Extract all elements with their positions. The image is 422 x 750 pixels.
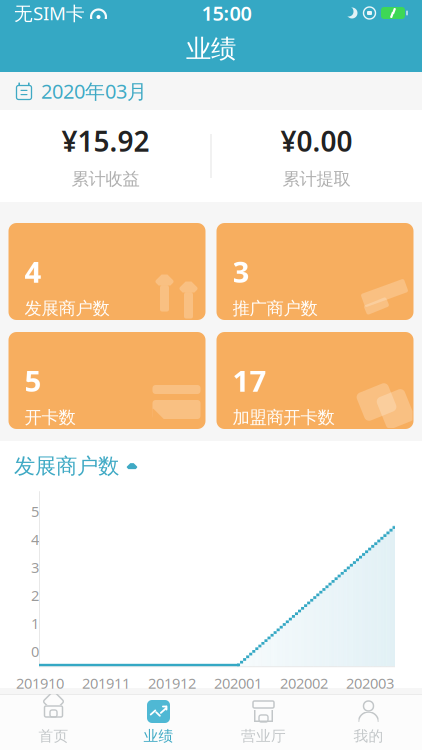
staticText: 我的 xyxy=(353,727,383,745)
button[interactable]: 我的 xyxy=(316,695,421,750)
staticText: 17 xyxy=(232,361,266,400)
button[interactable]: 2020年03月 xyxy=(0,72,422,110)
staticText: 201911 xyxy=(82,673,130,693)
staticText: 202003 xyxy=(346,673,394,693)
staticText: 4 xyxy=(31,529,39,549)
button[interactable]: 营业厅 xyxy=(211,695,316,750)
staticText: 5 xyxy=(31,501,39,521)
button[interactable]: 首页 xyxy=(1,695,106,750)
staticText: 累计提取 xyxy=(282,168,350,190)
staticText: 0 xyxy=(31,641,39,661)
staticText: 4 xyxy=(24,252,41,291)
staticText: 累计收益 xyxy=(71,168,139,190)
button[interactable]: 5 xyxy=(8,332,205,429)
staticText: 1 xyxy=(31,613,39,633)
staticText: 3 xyxy=(232,252,249,291)
staticText: 业绩 xyxy=(186,33,236,64)
button[interactable]: 3 xyxy=(216,223,413,320)
staticText: 3 xyxy=(31,557,39,577)
staticText: 202001 xyxy=(214,673,262,693)
staticText: 营业厅 xyxy=(241,727,286,745)
staticText: 加盟商开卡数 xyxy=(232,407,334,428)
staticText: ¥0.00 xyxy=(280,122,352,159)
staticText: 发展商户数 xyxy=(24,298,109,319)
staticText: 201912 xyxy=(148,673,196,693)
staticText: 2020年03月 xyxy=(41,78,147,104)
staticText: 201910 xyxy=(16,673,64,693)
button[interactable]: 业绩 xyxy=(106,695,211,750)
button[interactable]: 17 xyxy=(216,332,413,429)
staticText: 无SIM卡 xyxy=(14,1,85,25)
staticText: ¥15.92 xyxy=(61,122,149,159)
staticText: 2 xyxy=(31,585,39,605)
button[interactable]: 发展商户数 xyxy=(0,441,138,491)
staticText: 业绩 xyxy=(143,727,173,745)
staticText: 15:00 xyxy=(201,0,251,26)
staticText: 首页 xyxy=(38,727,68,745)
staticText: 推广商户数 xyxy=(232,298,317,319)
staticText: 开卡数 xyxy=(24,407,75,428)
staticText: 202002 xyxy=(280,673,328,693)
staticText: 发展商户数 xyxy=(14,453,119,479)
staticText: 5 xyxy=(24,361,41,400)
button[interactable]: 4 xyxy=(8,223,205,320)
